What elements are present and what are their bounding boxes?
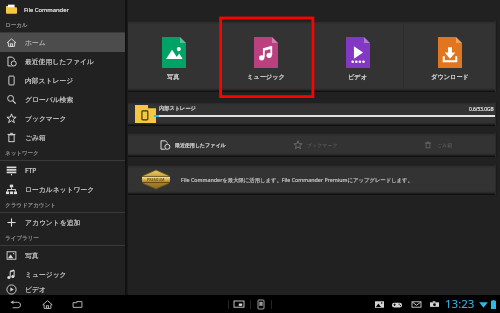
staticText: FTP: [25, 166, 37, 175]
button[interactable]: 内部ストレージ: [128, 104, 495, 122]
button[interactable]: FTP: [0, 161, 125, 180]
button[interactable]: ホーム: [0, 33, 125, 52]
button[interactable]: 内部ストレージ: [0, 71, 125, 90]
button[interactable]: Cast screen: [234, 299, 244, 309]
button[interactable]: ミュージック: [0, 265, 125, 284]
button[interactable]: ミュージック: [220, 23, 311, 88]
staticText: 写真: [167, 73, 180, 81]
button[interactable]: 写真: [0, 246, 125, 265]
button[interactable]: ビデオ: [312, 23, 403, 88]
staticText: 写真: [25, 251, 39, 260]
staticText: ビデオ: [348, 73, 367, 81]
staticText: ローカル: [5, 22, 28, 29]
button[interactable]: ローカルネットワーク: [0, 180, 125, 199]
staticText: ホーム: [25, 38, 46, 47]
staticText: クラウドアカウント: [5, 202, 56, 209]
staticText: ごみ箱: [25, 133, 46, 142]
staticText: 内部ストレージ: [159, 105, 196, 112]
staticText: ダウンロード: [431, 73, 469, 81]
staticText: 最近使用したファイル: [175, 142, 226, 148]
staticText: ネットワーク: [5, 150, 39, 157]
staticText: グローバル検索: [25, 95, 74, 104]
staticText: ローカルネットワーク: [25, 185, 95, 194]
staticText: ブックマーク: [25, 114, 67, 123]
staticText: 内部ストレージ: [25, 76, 74, 85]
button[interactable]: PREMIUM: [128, 167, 495, 192]
staticText: 最近使用したファイル: [25, 57, 94, 66]
staticText: File Commanderを最大限に活用します。File Commander …: [181, 176, 413, 183]
staticText: ごみ箱: [437, 142, 453, 148]
button[interactable]: 最近使用したファイル: [128, 135, 251, 154]
button[interactable]: アカウントを追加: [0, 213, 125, 232]
button[interactable]: Home: [41, 298, 54, 311]
button[interactable]: ブックマーク: [251, 135, 374, 154]
button[interactable]: Back: [9, 298, 22, 311]
button[interactable]: File Commander: [0, 0, 125, 19]
staticText: 0.6/53.0GB: [469, 106, 494, 113]
button[interactable]: ビデオ: [0, 284, 125, 295]
button[interactable]: ごみ箱: [374, 135, 495, 154]
staticText: ライブラリー: [5, 235, 39, 242]
button[interactable]: 写真: [128, 23, 219, 88]
staticText: ビデオ: [25, 285, 46, 294]
button[interactable]: ブックマーク: [0, 109, 125, 128]
staticText: アカウントを追加: [25, 218, 81, 227]
staticText: ブックマーク: [307, 142, 338, 148]
staticText: ミュージック: [247, 73, 285, 81]
button[interactable]: SIM: [258, 300, 264, 309]
button[interactable]: Recents: [71, 298, 84, 311]
staticText: File Commander: [24, 6, 69, 14]
staticText: ミュージック: [25, 270, 67, 279]
staticText: 13:23: [445, 296, 475, 312]
button[interactable]: ダウンロード: [404, 23, 495, 88]
button[interactable]: 最近使用したファイル: [0, 52, 125, 71]
staticText: PREMIUM: [147, 177, 165, 182]
button[interactable]: グローバル検索: [0, 90, 125, 109]
button[interactable]: ごみ箱: [0, 128, 125, 147]
